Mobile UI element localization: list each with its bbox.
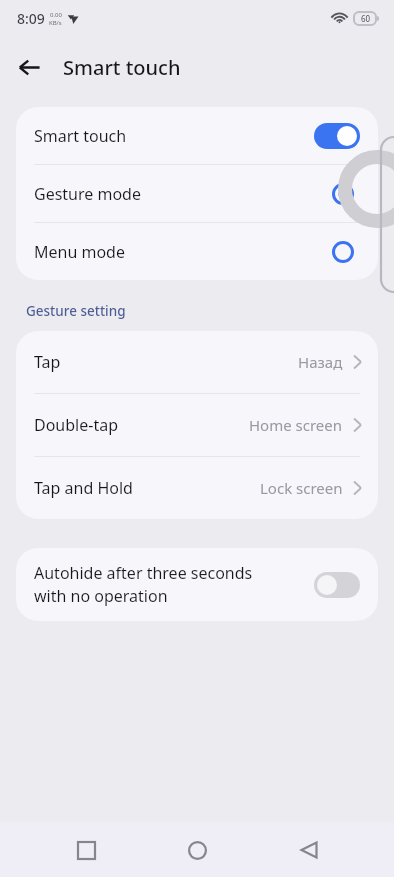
staticText: Назад xyxy=(298,352,343,372)
button[interactable]: Smart touch toggle, on xyxy=(314,123,360,149)
staticText: Menu mode xyxy=(34,241,125,263)
button[interactable]: Autohide toggle, off xyxy=(314,572,360,598)
button[interactable]: Home xyxy=(171,824,223,876)
staticText: Tap xyxy=(34,351,61,373)
staticText: Autohide after three seconds with no ope… xyxy=(34,562,306,607)
staticText: Double-tap xyxy=(34,414,118,436)
button[interactable]: Double-tap xyxy=(16,394,378,456)
staticText: Gesture mode xyxy=(34,183,141,205)
staticText: Gesture setting xyxy=(26,302,126,320)
other: Smart touch floating button xyxy=(338,150,394,228)
staticText: 60 xyxy=(361,13,371,24)
staticText: Smart touch xyxy=(34,125,127,147)
staticText: 0.00 xyxy=(50,11,62,19)
button[interactable]: Selected xyxy=(326,177,360,211)
button[interactable]: Menu mode xyxy=(16,223,378,280)
button[interactable]: Tap and Hold xyxy=(16,457,378,519)
button[interactable]: Tap xyxy=(16,331,378,393)
button[interactable]: Back xyxy=(283,824,335,876)
staticText: Tap and Hold xyxy=(34,477,133,499)
button[interactable]: Autohide after three seconds with no ope… xyxy=(16,548,378,621)
button[interactable]: Recent apps xyxy=(60,824,112,876)
staticText: Smart touch xyxy=(63,54,181,81)
button[interactable]: Smart touch xyxy=(16,107,378,164)
staticText: Home screen xyxy=(249,415,343,435)
staticText: Lock screen xyxy=(260,478,343,498)
staticText: 8:09 xyxy=(17,9,45,28)
staticText: KB/s xyxy=(49,19,62,27)
button[interactable]: Gesture mode xyxy=(16,165,378,222)
button[interactable]: Not selected xyxy=(326,235,360,269)
button[interactable]: Back xyxy=(8,46,50,88)
